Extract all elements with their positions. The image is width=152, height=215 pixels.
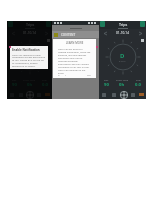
button[interactable]: Fuel	[37, 78, 52, 90]
button[interactable]: Trips	[7, 90, 16, 99]
button[interactable]: Map	[109, 90, 119, 99]
button[interactable]: Trips	[99, 90, 109, 99]
button[interactable]: OK	[87, 75, 91, 76]
button[interactable]: Next day	[138, 31, 142, 35]
button[interactable]: Drive Time	[114, 78, 130, 90]
staticText: 0.0 km	[119, 60, 126, 63]
button[interactable]: Cancel	[58, 75, 67, 76]
button[interactable]: Stats	[128, 90, 137, 99]
button[interactable]: Navigate	[119, 90, 128, 99]
staticText: D	[120, 52, 125, 60]
staticText: Trips	[26, 22, 35, 27]
button[interactable]: Settings	[140, 21, 145, 27]
button[interactable]: Alerts	[137, 90, 146, 99]
staticText: Fuel	[42, 78, 47, 81]
staticText: 90	[12, 82, 17, 88]
button[interactable]: Menu	[100, 21, 105, 27]
staticText: LEARN MORE	[58, 41, 91, 45]
staticText: Trips	[119, 22, 128, 27]
button[interactable]: Navigate	[25, 90, 34, 99]
button[interactable]: Drive Time	[22, 78, 37, 90]
staticText: D	[27, 52, 32, 60]
button[interactable]: Map	[16, 90, 25, 99]
staticText: Track Car requires to have notification …	[12, 53, 46, 67]
staticText: 01-10-14	[23, 31, 36, 35]
button[interactable]: Dist	[99, 78, 114, 90]
staticText: Drive Time	[116, 78, 129, 81]
staticText: 0.0	[42, 82, 48, 88]
staticText: Dist	[12, 78, 17, 81]
staticText: 0h	[27, 82, 33, 88]
staticText: Dist	[104, 78, 109, 81]
staticText: CONTENT	[61, 33, 76, 37]
staticText: Drive Time	[23, 78, 36, 81]
staticText: 90	[104, 82, 109, 88]
button[interactable]: Previous day	[103, 31, 107, 35]
button[interactable]: Next day	[44, 31, 48, 35]
button[interactable]: Stats	[34, 90, 43, 99]
staticText: Track Car will access to needed notifica…	[58, 48, 91, 75]
button[interactable]: Dist	[7, 78, 22, 90]
staticText: 01-10-14	[116, 31, 129, 35]
button[interactable]: Previous day	[11, 31, 15, 35]
staticText: 0.0 km	[26, 60, 33, 63]
button[interactable]: Alerts	[43, 90, 52, 99]
staticText: 0h	[119, 82, 125, 88]
staticText: 0.0	[135, 82, 141, 88]
button[interactable]: Enable Notification	[10, 46, 48, 69]
staticText: Enable Notification	[12, 48, 40, 52]
button[interactable]: Fuel	[130, 78, 146, 90]
staticText: Fuel	[136, 78, 141, 81]
